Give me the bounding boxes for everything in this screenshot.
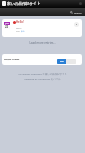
staticText: Cats	[16, 30, 21, 32]
staticText: All content Copyright © 家いの品作記サイト	[0, 72, 85, 75]
staticText: 22	[5, 25, 9, 29]
button[interactable]: JUN	[2, 19, 82, 37]
staticText: ON	[60, 60, 64, 63]
button[interactable]: Search	[70, 11, 82, 14]
staticText: JUN	[5, 22, 9, 25]
staticText: Search	[74, 11, 82, 14]
staticText: 家いの品作記サイト	[7, 1, 41, 6]
button[interactable]: More options	[74, 22, 79, 27]
button[interactable]: 未分	[21, 30, 25, 32]
staticText: admin	[16, 27, 22, 29]
button[interactable]: Load more entries…	[0, 41, 85, 45]
button[interactable]: Mobile theme on	[57, 59, 76, 64]
button[interactable]: Menu	[2, 1, 6, 6]
button[interactable]: Hello!	[16, 20, 24, 24]
button[interactable]: Account	[78, 1, 83, 6]
staticText: Mobile Theme	[4, 58, 20, 61]
staticText: Powered by WordPress モバイル	[0, 77, 85, 80]
